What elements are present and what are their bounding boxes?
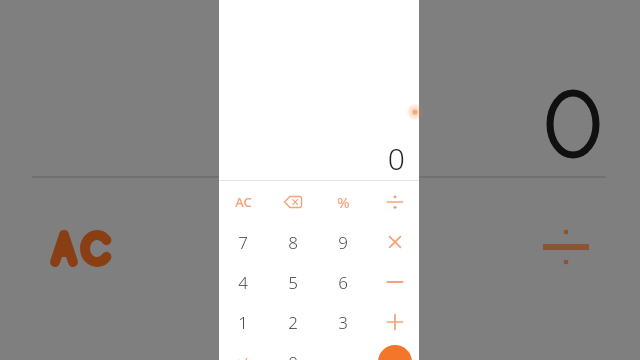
staticText: %	[337, 192, 350, 212]
staticText: 2	[288, 311, 298, 334]
staticText: 7	[238, 231, 248, 254]
button[interactable]: 1	[220, 303, 266, 341]
staticText: 9	[338, 231, 348, 254]
staticText: 1	[238, 311, 248, 334]
button[interactable]: Divide	[372, 183, 418, 221]
button[interactable]: Equals	[378, 345, 412, 360]
button[interactable]: Backspace	[270, 183, 316, 221]
button[interactable]: 3	[320, 303, 366, 341]
button[interactable]: 7	[220, 223, 266, 261]
staticText: 0	[288, 351, 298, 360]
button[interactable]: Percent	[320, 183, 366, 221]
button[interactable]: 6	[320, 263, 366, 301]
button[interactable]: All clear	[220, 183, 266, 221]
button[interactable]: 4	[220, 263, 266, 301]
button[interactable]: 5	[270, 263, 316, 301]
staticText: 5	[288, 271, 298, 294]
button[interactable]: Multiply	[372, 223, 418, 261]
staticText: 4	[238, 271, 248, 294]
button[interactable]: 8	[270, 223, 316, 261]
staticText: 3	[338, 311, 348, 334]
staticText: 8	[288, 231, 298, 254]
staticText: 6	[338, 271, 348, 294]
staticText: 0	[387, 138, 405, 178]
staticText: AC	[235, 193, 252, 211]
button[interactable]: 0	[270, 343, 316, 360]
button[interactable]: Toggle sign	[220, 343, 266, 360]
button[interactable]: 2	[270, 303, 316, 341]
staticText: +/-	[235, 353, 252, 360]
button[interactable]: Plus	[372, 303, 418, 341]
button[interactable]: Minus	[372, 263, 418, 301]
button[interactable]: 9	[320, 223, 366, 261]
